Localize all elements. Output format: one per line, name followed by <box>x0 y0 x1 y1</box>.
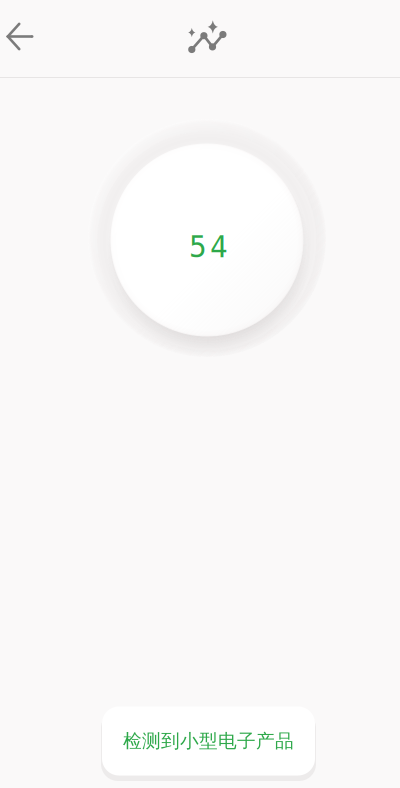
button[interactable]: 检测到小型电子产品 <box>102 702 315 780</box>
button[interactable]: Back <box>0 12 42 60</box>
staticText: 检测到小型电子产品 <box>123 729 294 752</box>
staticText: 54 <box>189 230 228 264</box>
button[interactable]: Analysis <box>181 14 233 62</box>
